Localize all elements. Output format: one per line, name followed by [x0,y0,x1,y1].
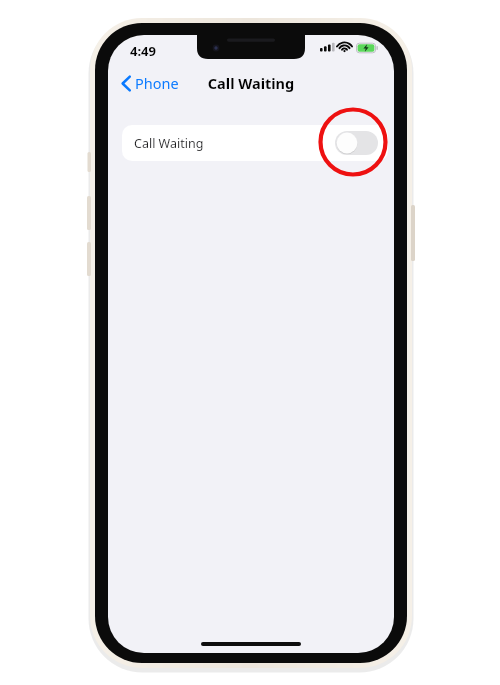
button[interactable]: Phone [117,68,183,98]
button[interactable]: Call Waiting [122,125,388,161]
staticText: Call Waiting [134,135,204,152]
button[interactable]: Call Waiting toggle, off [335,131,378,155]
staticText: 4:49 [130,42,156,60]
staticText: Call Waiting [108,73,394,93]
staticText: Phone [135,73,179,93]
